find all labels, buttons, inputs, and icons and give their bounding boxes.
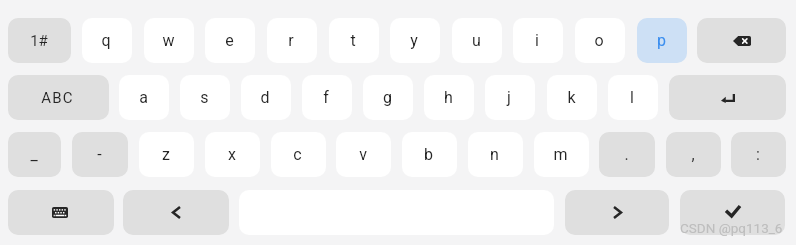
staticText: , [691,145,695,164]
staticText: e [225,31,234,50]
staticText: o [594,31,604,50]
button[interactable]: 1# [8,18,71,63]
staticText: x [228,145,236,164]
button[interactable]: k [547,75,597,120]
staticText: ABC [41,89,74,107]
button[interactable]: Switch keyboard [8,190,114,235]
button[interactable]: b [402,132,457,177]
button[interactable]: Done [680,190,785,235]
staticText: b [424,145,433,164]
button[interactable]: c [271,132,326,177]
button[interactable]: , [666,132,721,177]
staticText: m [553,145,568,164]
staticText: : [756,145,760,164]
button[interactable]: - [72,132,128,177]
button[interactable]: . [599,132,655,177]
button[interactable]: Next [565,190,669,235]
staticText: CSDN @pq113_6 [680,220,783,236]
staticText: y [410,31,418,50]
button[interactable]: l [608,75,658,120]
button[interactable]: g [363,75,413,120]
button[interactable]: ABC [8,75,109,120]
button[interactable]: p [637,18,687,63]
staticText: g [383,88,392,107]
button[interactable]: o [575,18,625,63]
staticText: n [490,145,499,164]
staticText: j [507,88,511,107]
button[interactable]: Previous [123,190,229,235]
staticText: q [101,31,111,50]
staticText: d [260,88,270,107]
button[interactable]: v [336,132,391,177]
button[interactable]: e [205,18,255,63]
button[interactable]: s [180,75,230,120]
staticText: v [359,145,367,164]
button[interactable]: n [468,132,523,177]
staticText: f [323,88,329,107]
staticText: h [444,88,453,107]
button[interactable]: t [329,18,379,63]
button[interactable]: i [513,18,563,63]
staticText: - [97,145,102,164]
staticText: . [624,145,629,164]
button[interactable]: x [205,132,260,177]
button[interactable]: q [82,18,132,63]
staticText: k [567,88,576,107]
staticText: z [162,145,170,164]
button[interactable]: r [267,18,317,63]
staticText: w [162,31,175,50]
button[interactable]: d [241,75,291,120]
staticText: p [657,31,666,50]
button[interactable]: h [424,75,474,120]
button[interactable]: w [144,18,194,63]
button[interactable]: u [452,18,502,63]
staticText: l [630,88,634,107]
button[interactable]: _ [8,132,61,177]
staticText: 1# [30,32,48,50]
button[interactable]: y [390,18,440,63]
button[interactable]: m [534,132,589,177]
button[interactable]: Backspace [697,18,786,63]
button[interactable]: z [139,132,194,177]
button[interactable]: j [485,75,535,120]
staticText: _ [30,145,38,164]
button[interactable]: f [302,75,352,120]
staticText: u [472,31,481,50]
staticText: t [350,31,356,50]
staticText: r [288,31,294,50]
staticText: c [293,145,302,164]
staticText: a [139,88,148,107]
staticText: i [535,31,539,50]
button[interactable]: : [731,132,786,177]
button[interactable]: Enter [669,75,786,120]
staticText: s [200,88,209,107]
button[interactable]: a [119,75,169,120]
